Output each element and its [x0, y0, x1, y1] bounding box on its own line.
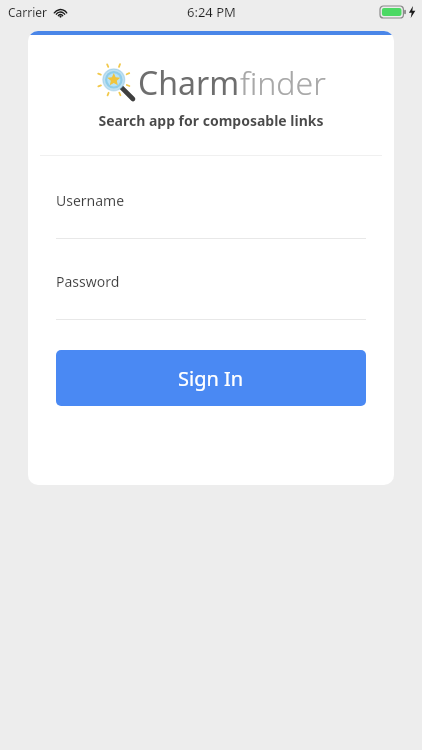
button[interactable]: Sign In	[56, 350, 366, 406]
staticText: Charm	[138, 61, 240, 105]
staticText: 6:24 PM	[187, 3, 236, 21]
staticText: Search app for composable links	[28, 111, 394, 130]
button[interactable]: Password	[56, 272, 366, 320]
staticText: Carrier	[8, 4, 48, 20]
staticText: Password	[56, 272, 120, 291]
staticText: finder	[240, 61, 326, 105]
staticText: Username	[56, 191, 125, 210]
button[interactable]: Username	[56, 191, 366, 239]
staticText: Sign In	[178, 365, 244, 392]
